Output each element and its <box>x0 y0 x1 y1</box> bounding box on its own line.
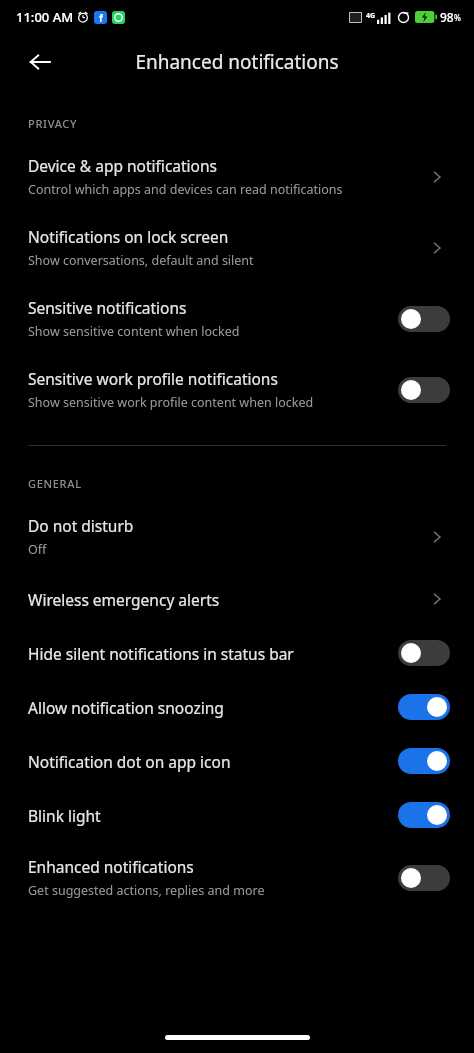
staticText: Show sensitive content when locked <box>28 323 240 340</box>
button[interactable]: Toggle off <box>398 640 450 666</box>
staticText: 98 <box>440 9 454 25</box>
button[interactable]: Toggle off <box>398 865 450 891</box>
staticText: Sensitive notifications <box>28 297 187 318</box>
staticText: Control which apps and devices can read … <box>28 181 343 198</box>
button[interactable]: Sensitive notifications <box>0 283 474 354</box>
button[interactable]: Notification dot on app icon <box>0 734 474 788</box>
button[interactable]: Wireless emergency alerts <box>0 572 474 626</box>
staticText: Get suggested actions, replies and more <box>28 882 265 899</box>
staticText: Allow notification snoozing <box>28 697 224 718</box>
staticText: Notifications on lock screen <box>28 226 229 247</box>
staticText: Wireless emergency alerts <box>28 589 220 610</box>
staticText: Show conversations, default and silent <box>28 252 254 269</box>
staticText: % <box>454 12 461 23</box>
button[interactable]: Sensitive work profile notifications <box>0 354 474 425</box>
other: Open <box>424 586 450 612</box>
button[interactable]: Enhanced notifications <box>0 842 474 913</box>
staticText: Blink light <box>28 805 101 826</box>
button[interactable]: Notifications on lock screen <box>0 212 474 283</box>
staticText: Show sensitive work profile content when… <box>28 394 314 411</box>
other: Open <box>424 235 450 261</box>
staticText: Device & app notifications <box>28 155 217 176</box>
button[interactable]: Blink light <box>0 788 474 842</box>
staticText: 11:00 AM <box>16 8 74 26</box>
staticText: Enhanced notifications <box>135 49 339 75</box>
staticText: PRIVACY <box>28 116 78 131</box>
button[interactable]: Do not disturb <box>0 501 474 572</box>
button[interactable]: Toggle on <box>398 802 450 828</box>
button[interactable]: Toggle off <box>398 377 450 403</box>
staticText: f <box>99 11 103 24</box>
staticText: Enhanced notifications <box>28 856 194 877</box>
staticText: 4G <box>366 11 376 21</box>
button[interactable]: Toggle off <box>398 306 450 332</box>
button[interactable]: Toggle on <box>398 748 450 774</box>
staticText: Hide silent notifications in status bar <box>28 643 294 664</box>
staticText: Off <box>28 541 47 558</box>
button[interactable]: Allow notification snoozing <box>0 680 474 734</box>
staticText: GENERAL <box>28 476 82 491</box>
staticText: Sensitive work profile notifications <box>28 368 278 389</box>
button[interactable]: Toggle on <box>398 694 450 720</box>
staticText: Notification dot on app icon <box>28 751 231 772</box>
button[interactable]: Device & app notifications <box>0 141 474 212</box>
other: Open <box>424 524 450 550</box>
other: Open <box>424 164 450 190</box>
button[interactable]: Hide silent notifications in status bar <box>0 626 474 680</box>
staticText: Do not disturb <box>28 515 134 536</box>
button[interactable]: Back <box>16 38 64 86</box>
